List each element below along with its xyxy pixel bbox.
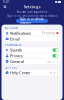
staticText: You are not signed in bbox=[16, 10, 47, 14]
button[interactable]: Privacy bbox=[3, 53, 60, 58]
staticText: Pending bbox=[42, 31, 55, 35]
button[interactable]: Sounds bbox=[3, 47, 60, 53]
button[interactable]: Email bbox=[3, 36, 60, 41]
staticText: v1.0 bbox=[50, 71, 56, 74]
staticText: Sounds bbox=[10, 47, 22, 53]
staticText: Sign in or create account bbox=[20, 17, 44, 24]
button[interactable]: Sign in or create account bbox=[16, 19, 48, 23]
staticText: ? bbox=[7, 71, 8, 74]
staticText: Sign in to sync settings across devices bbox=[7, 14, 57, 18]
button[interactable]: ? bbox=[3, 70, 60, 75]
staticText: Help Center bbox=[10, 70, 31, 75]
staticText: Privacy bbox=[10, 53, 23, 58]
staticText: Notifications bbox=[10, 30, 31, 36]
staticText: PREFERENCES bbox=[5, 43, 21, 47]
staticText: Email bbox=[10, 36, 20, 41]
staticText: SUPPORT bbox=[5, 66, 17, 69]
staticText: iOS 17 bbox=[47, 60, 56, 63]
staticText: ACCOUNT bbox=[5, 26, 18, 30]
staticText: Settings bbox=[23, 4, 40, 9]
staticText: General bbox=[10, 59, 24, 64]
button[interactable]: Close bbox=[2, 4, 8, 9]
staticText: 9:41 bbox=[3, 0, 10, 4]
button[interactable]: Notifications bbox=[3, 30, 60, 36]
button[interactable]: General bbox=[3, 59, 60, 64]
